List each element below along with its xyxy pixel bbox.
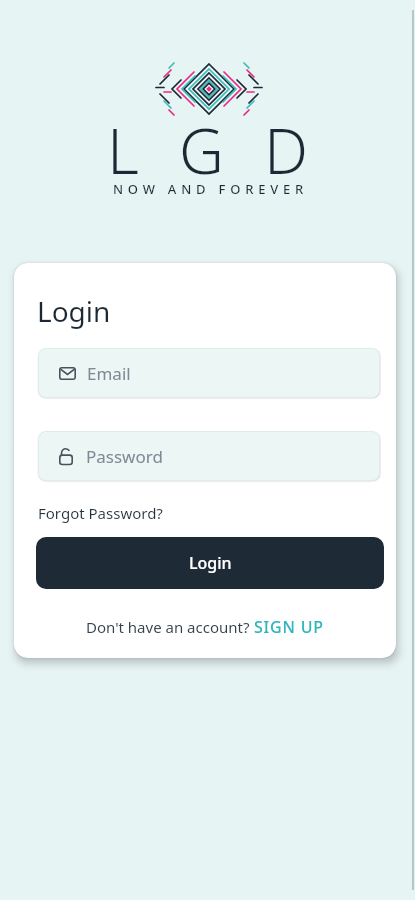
button[interactable]: Password bbox=[38, 431, 380, 481]
button[interactable]: Email bbox=[38, 348, 380, 398]
staticText: NOW AND FOREVER bbox=[3, 180, 415, 198]
staticText: Don't have an account? bbox=[86, 617, 254, 637]
staticText: Login bbox=[37, 292, 111, 330]
button[interactable]: Don't have an account? bbox=[14, 616, 396, 638]
staticText: L G D bbox=[6, 108, 415, 192]
staticText: SIGN UP bbox=[254, 616, 324, 638]
button[interactable]: Forgot Password? bbox=[38, 503, 163, 523]
staticText: Email bbox=[87, 362, 131, 385]
button[interactable]: Login bbox=[36, 537, 384, 589]
staticText: Password bbox=[86, 445, 163, 468]
staticText: Login bbox=[189, 552, 232, 574]
